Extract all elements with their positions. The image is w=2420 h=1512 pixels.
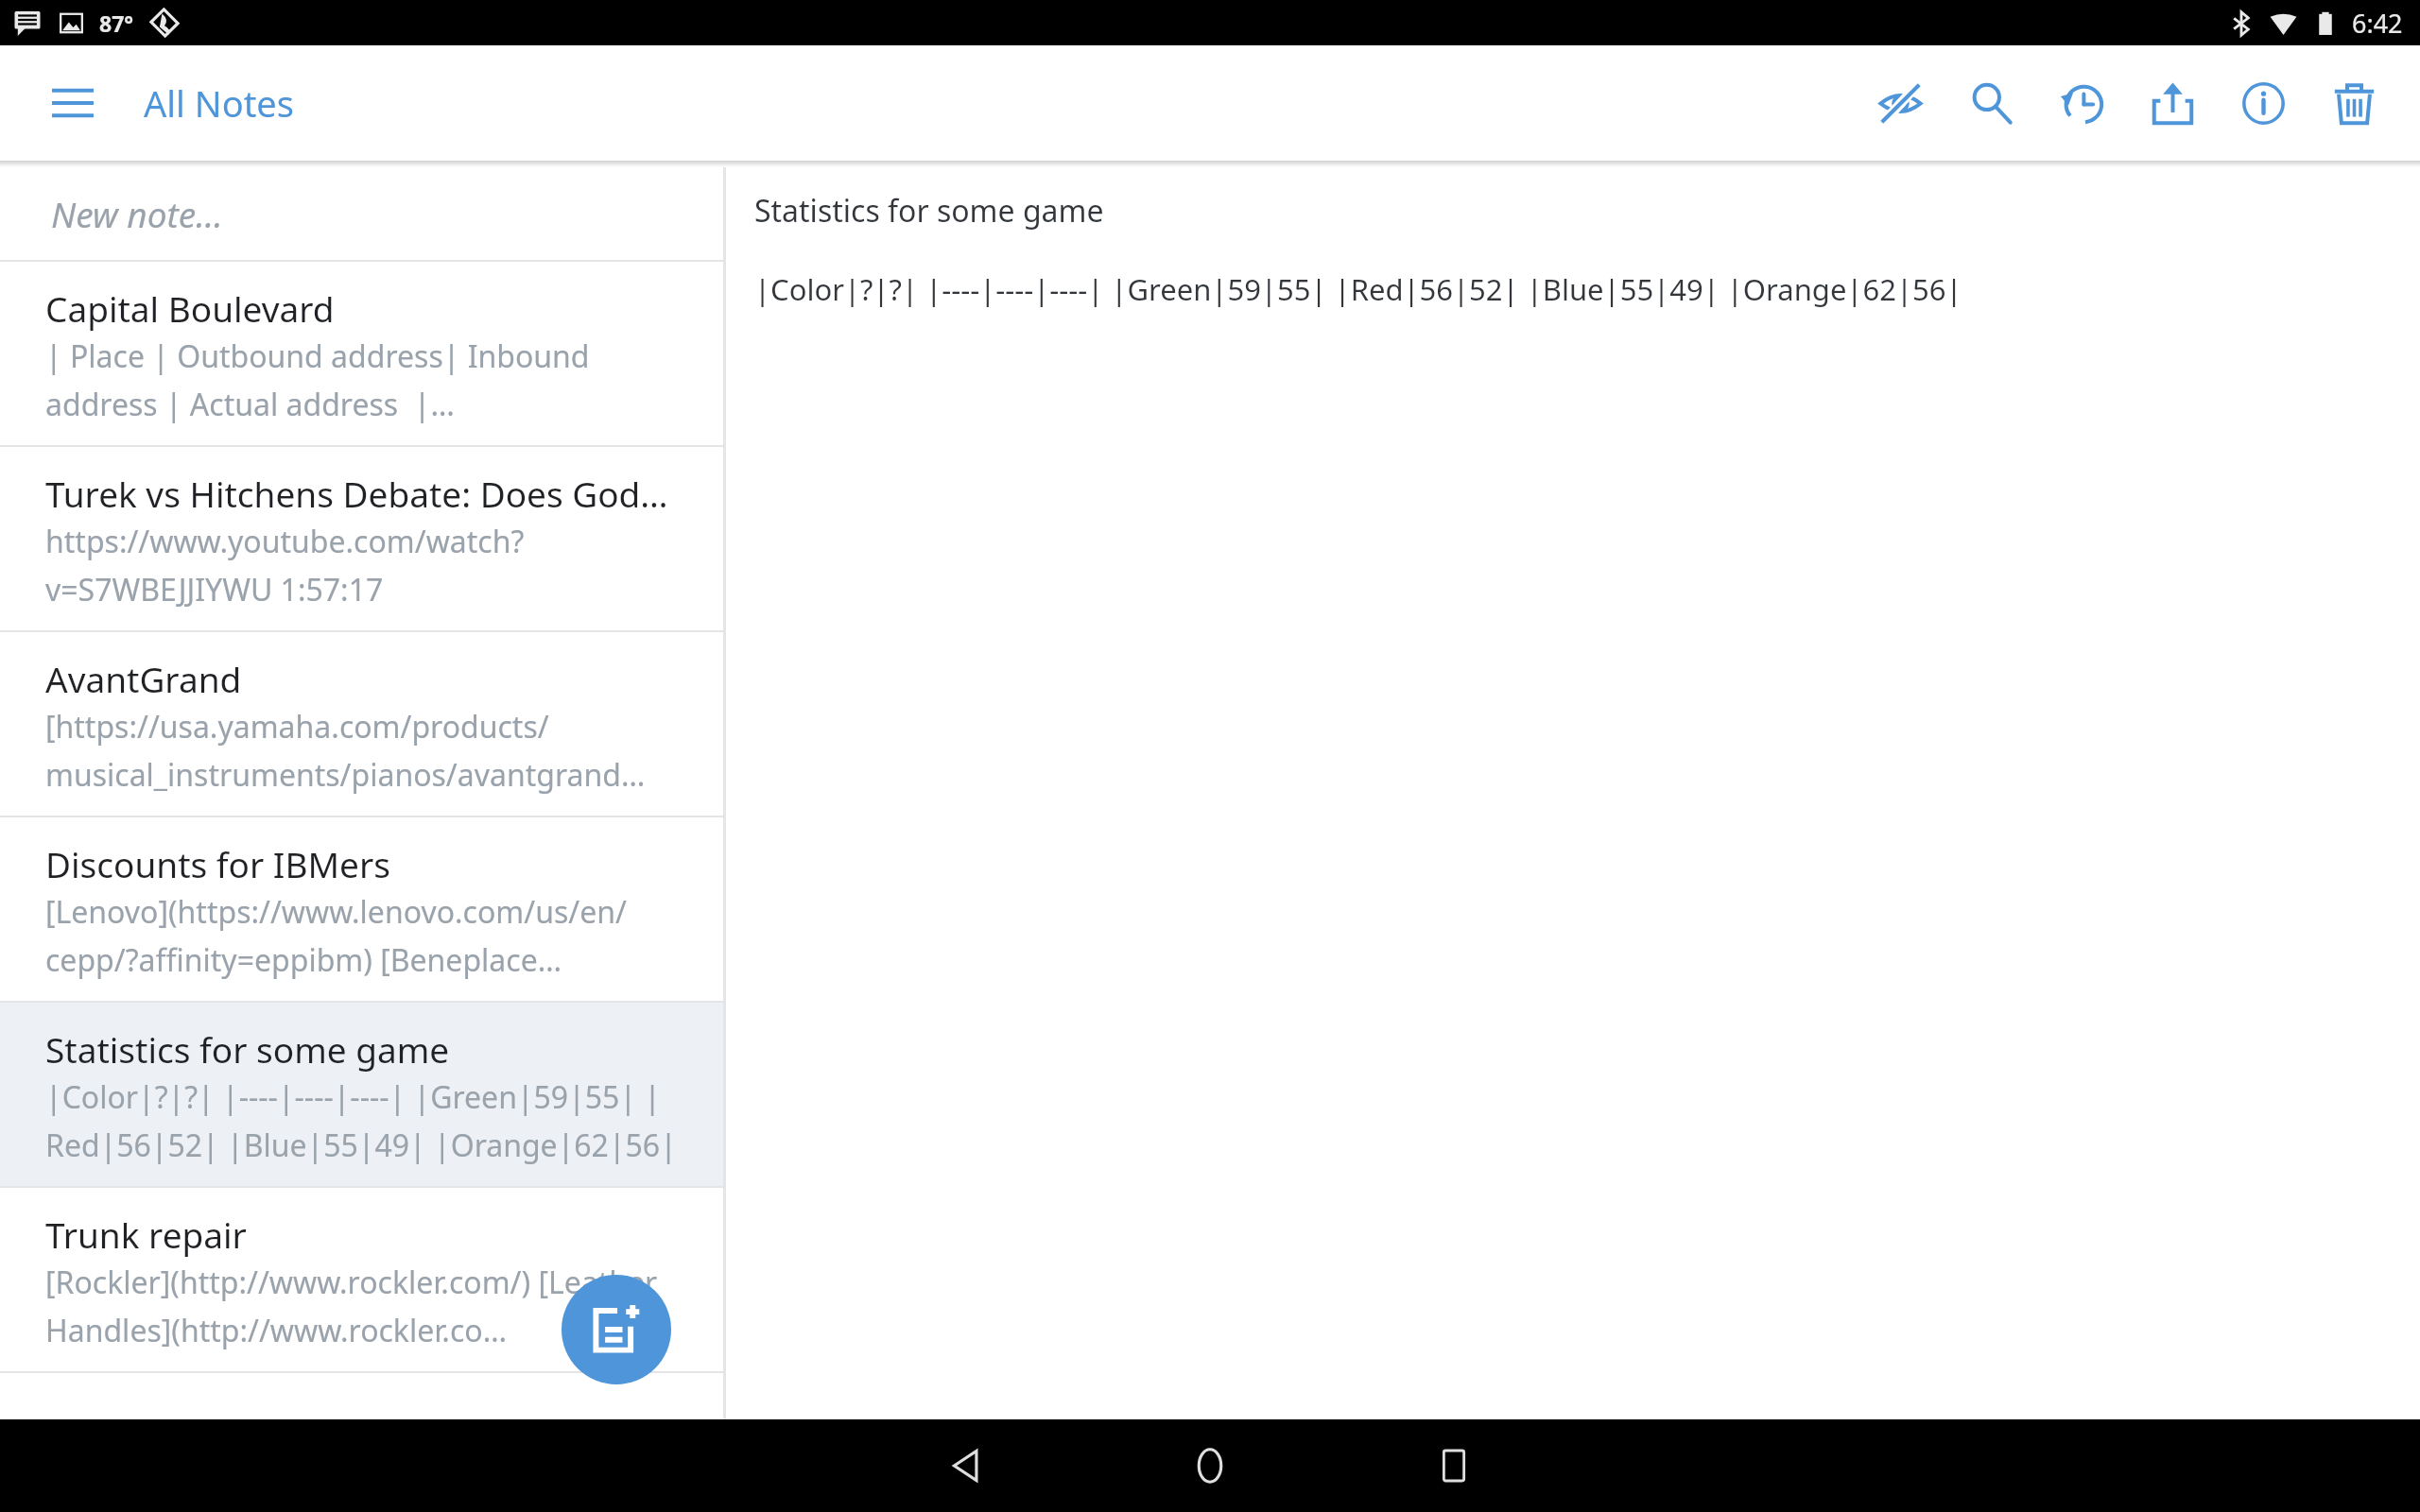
button[interactable]: Discounts for IBMers (0, 817, 723, 1001)
staticText: AvantGrand (45, 655, 242, 702)
staticText: Capital Boulevard (45, 284, 335, 332)
button[interactable]: Search (1945, 58, 2036, 148)
staticText: https://www.youtube.com/watch?v=S7WBEJJI… (45, 521, 695, 610)
staticText: [https://usa.yamaha.com/products/musical… (45, 706, 695, 795)
button[interactable]: Home (1158, 1419, 1262, 1512)
button[interactable]: Back (914, 1419, 1018, 1512)
button[interactable]: Open navigation drawer (43, 74, 102, 132)
staticText: |Color|?|?| |----|----|----| |Green|59|5… (45, 1076, 695, 1165)
staticText: | Place | Outbound address| Inbound addr… (45, 335, 695, 424)
button[interactable]: History (2036, 58, 2127, 148)
button[interactable]: Hide content (1855, 58, 1945, 148)
button[interactable]: AvantGrand (0, 632, 723, 816)
staticText: [Rockler](http://www.rockler.com/) [Leat… (45, 1262, 695, 1350)
button[interactable]: Delete (2308, 58, 2399, 148)
staticText: Discounts for IBMers (45, 840, 390, 887)
staticText: Statistics for some game (45, 1025, 450, 1073)
button[interactable]: Recent apps (1402, 1419, 1506, 1512)
staticText: [Lenovo](https://www.lenovo.com/us/en/ce… (45, 891, 695, 980)
button[interactable]: Info (2218, 58, 2308, 148)
button[interactable]: Statistics for some game (0, 1003, 723, 1186)
staticText: 6:42 (2352, 6, 2403, 41)
button[interactable]: Turek vs Hitchens Debate: Does God… (0, 447, 723, 630)
button[interactable]: Lynchburg from Binghamton (0, 1373, 723, 1419)
staticText: All Notes (144, 78, 294, 128)
button[interactable]: Trunk repair (0, 1188, 723, 1371)
button[interactable]: New note… (0, 167, 723, 260)
staticText: 87° (99, 9, 134, 38)
staticText: Turek vs Hitchens Debate: Does God… (45, 470, 668, 517)
staticText: Statistics for some game (754, 190, 1104, 232)
staticText: New note… (51, 190, 223, 237)
button[interactable]: New note (562, 1275, 671, 1384)
button[interactable]: Share (2127, 58, 2218, 148)
button[interactable]: Capital Boulevard (0, 262, 723, 445)
staticText: |Color|?|?| |----|----|----| |Green|59|5… (754, 269, 1962, 309)
staticText: Trunk repair (45, 1211, 247, 1258)
